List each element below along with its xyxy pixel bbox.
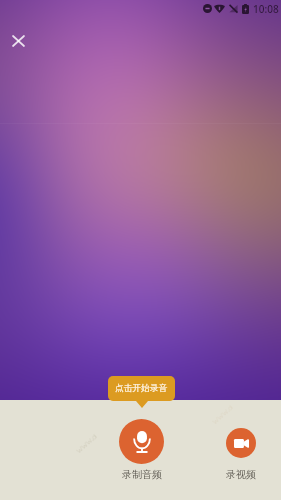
staticText: 录视频: [226, 468, 256, 481]
button[interactable]: 录视频: [203, 428, 278, 481]
button[interactable]: 点击开始录音: [108, 376, 175, 401]
staticText: 10:08: [253, 2, 279, 16]
button[interactable]: 录制音频: [104, 419, 179, 481]
staticText: 点击开始录音: [115, 383, 168, 394]
button[interactable]: Close: [5, 28, 31, 54]
staticText: 录制音频: [122, 468, 162, 481]
